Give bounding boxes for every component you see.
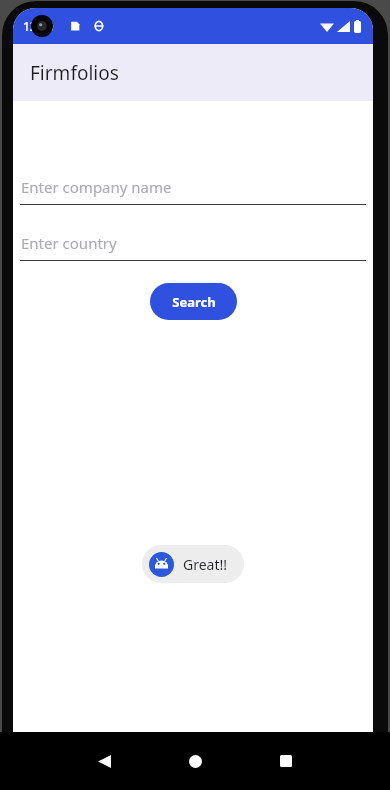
staticText: 12:00	[23, 18, 54, 34]
staticText: Search	[172, 293, 216, 311]
staticText: Great!!	[183, 555, 228, 574]
button[interactable]: Search	[150, 283, 237, 320]
button[interactable]: Enter company name	[20, 177, 366, 205]
button[interactable]: Enter country	[20, 233, 366, 261]
button[interactable]: Home	[175, 741, 215, 781]
button[interactable]: Great!!	[142, 545, 244, 583]
button[interactable]: Recent apps	[266, 741, 306, 781]
staticText: Firmfolios	[30, 60, 119, 86]
staticText: Enter company name	[21, 177, 172, 197]
staticText: Enter country	[21, 233, 117, 253]
button[interactable]: Back	[84, 741, 124, 781]
